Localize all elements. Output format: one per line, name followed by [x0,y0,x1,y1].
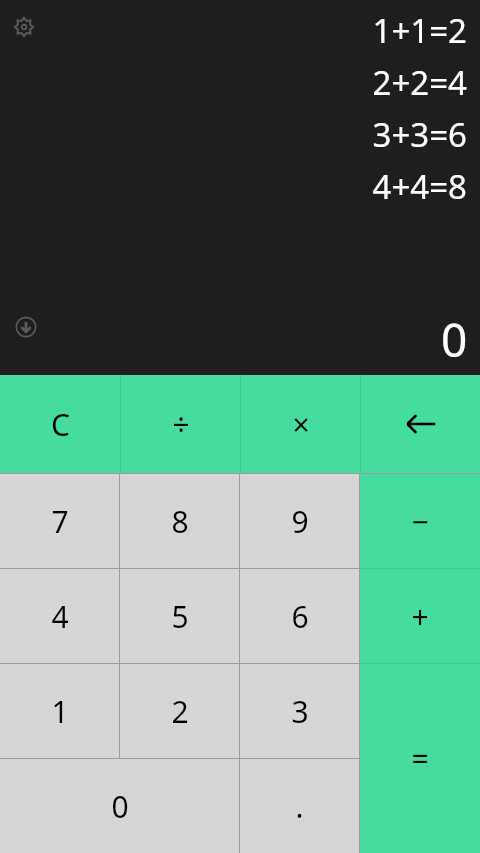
button[interactable]: − [360,474,480,568]
button[interactable]: . [240,759,359,853]
button[interactable]: 6 [240,569,359,663]
staticText: = [411,738,429,779]
staticText: 2 [171,691,189,732]
button[interactable]: 3 [240,664,359,758]
staticText: 9 [291,501,309,542]
staticText: + [411,596,429,637]
staticText: 6 [291,596,309,637]
staticText: 0 [441,308,468,371]
staticText: C [51,404,70,445]
button[interactable]: History [13,314,39,340]
staticText: 3 [291,691,309,732]
button[interactable]: 1 [0,664,119,758]
button[interactable]: ÷ [121,375,240,473]
button[interactable]: × [241,375,360,473]
staticText: − [411,501,429,542]
staticText: 2+2=4 [372,60,467,105]
button[interactable]: 5 [120,569,239,663]
staticText: 1+1=2 [372,8,467,53]
button[interactable]: 8 [120,474,239,568]
staticText: 8 [171,501,189,542]
button[interactable]: Settings [10,13,38,41]
staticText: . [295,786,304,827]
staticText: 7 [51,501,69,542]
button[interactable]: 4 [0,569,119,663]
staticText: × [292,404,310,445]
staticText: ÷ [172,404,190,445]
button[interactable]: 7 [0,474,119,568]
button[interactable]: Backspace [361,375,480,473]
staticText: 5 [171,596,189,637]
staticText: 3+3=6 [372,112,467,157]
button[interactable]: + [360,569,480,663]
button[interactable]: 2 [120,664,239,758]
button[interactable]: = [360,664,480,853]
staticText: 1 [51,691,69,732]
button[interactable]: 0 [0,759,239,853]
staticText: 4+4=8 [372,164,467,209]
staticText: 0 [111,786,129,827]
staticText: 4 [51,596,69,637]
button[interactable]: C [0,375,120,473]
button[interactable]: 9 [240,474,359,568]
